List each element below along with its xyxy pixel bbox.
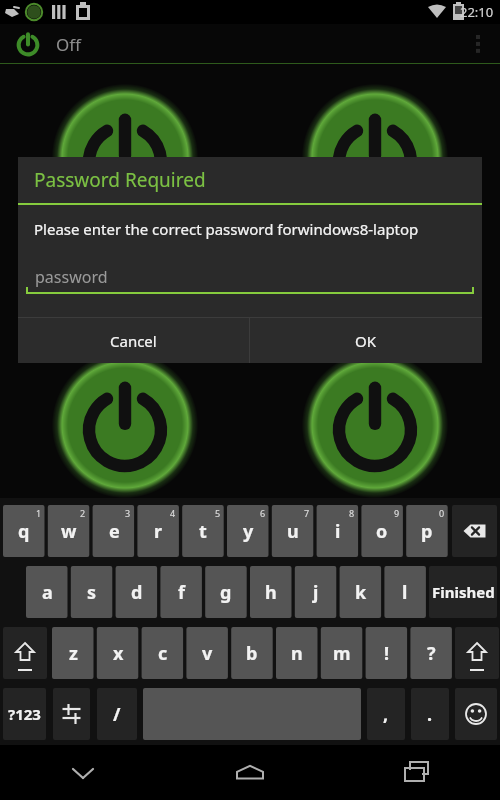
staticText: ! [384,641,390,666]
staticText: a [42,580,53,605]
button[interactable]: j [295,566,337,618]
button[interactable]: ?123 [3,688,46,740]
staticText: OK [355,331,377,351]
button[interactable]: q [3,505,45,557]
button[interactable]: f [160,566,202,618]
staticText: i [335,519,341,544]
button[interactable]: OK [250,318,482,363]
staticText: Finished [432,582,495,602]
staticText: 3 [125,507,131,519]
staticText: Password Required [34,167,206,193]
button[interactable]: m [321,627,363,679]
button[interactable]: . [411,688,449,740]
staticText: r [154,519,163,544]
button[interactable]: y [227,505,269,557]
button[interactable]: o [361,505,403,557]
button[interactable]: More options [456,24,500,64]
staticText: k [355,580,367,605]
button[interactable]: Recent apps [333,745,500,800]
button[interactable]: ? [410,627,452,679]
staticText: x [113,641,124,666]
button[interactable]: g [205,566,247,618]
button[interactable]: backspace [452,505,497,557]
staticText: 2 [80,507,86,519]
staticText: password [35,266,108,288]
staticText: n [291,641,303,666]
button[interactable]: d [116,566,158,618]
button[interactable]: u [272,505,314,557]
staticText: Please enter the correct password forwin… [34,219,419,239]
staticText: y [243,519,254,544]
button[interactable]: t [182,505,224,557]
staticText: z [69,641,78,666]
button[interactable]: Cancel [18,318,249,363]
button[interactable]: i [317,505,359,557]
button[interactable]: shift [3,627,47,679]
staticText: ?123 [8,704,41,724]
button[interactable]: p [406,505,448,557]
staticText: 7 [304,507,310,519]
staticText: / [113,702,121,727]
button[interactable]: Hide keyboard [0,745,166,800]
staticText: s [87,580,97,605]
staticText: g [220,580,232,605]
staticText: f [178,580,185,605]
staticText: . [427,702,433,727]
staticText: p [421,519,433,544]
button[interactable]: s [71,566,113,618]
staticText: q [18,519,30,544]
button[interactable]: n [276,627,318,679]
button[interactable]: ! [366,627,408,679]
staticText: m [333,641,351,666]
button[interactable]: e [93,505,135,557]
button[interactable]: / [97,688,137,740]
button[interactable]: b [231,627,273,679]
staticText: 8 [349,507,355,519]
button[interactable]: z [52,627,94,679]
button[interactable]: r [137,505,179,557]
staticText: 9 [394,507,400,519]
staticText: u [287,519,299,544]
staticText: ? [427,641,436,666]
staticText: 0 [439,507,445,519]
staticText: c [158,641,168,666]
staticText: t [199,519,207,544]
button[interactable]: Home [166,745,333,800]
button[interactable]: v [186,627,228,679]
staticText: Off [56,33,81,56]
staticText: 4 [170,507,176,519]
button[interactable]: l [384,566,426,618]
button[interactable]: , [367,688,405,740]
button[interactable]: k [340,566,382,618]
button[interactable]: w [48,505,90,557]
staticText: b [246,641,258,666]
button[interactable]: a [26,566,68,618]
staticText: 1 [36,507,42,519]
button[interactable]: settings [53,688,90,740]
staticText: , [383,702,389,727]
staticText: h [265,580,277,605]
button[interactable]: emoji [455,688,497,740]
staticText: j [313,580,319,605]
staticText: 22:10 [460,3,494,21]
button[interactable]: shift [455,627,499,679]
staticText: l [402,580,408,605]
staticText: e [109,519,120,544]
staticText: Cancel [110,331,157,351]
button[interactable]: x [97,627,139,679]
staticText: 6 [260,507,266,519]
staticText: 5 [215,507,221,519]
staticText: v [202,641,213,666]
staticText: d [131,580,143,605]
button[interactable]: Finished [429,566,497,618]
button[interactable]: c [142,627,184,679]
button[interactable]: h [250,566,292,618]
staticText: o [376,519,388,544]
staticText: w [61,519,77,544]
